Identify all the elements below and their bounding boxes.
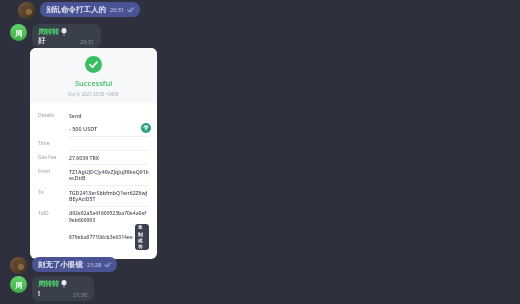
staticText: 好 [38, 36, 46, 45]
button[interactable]: Avatar [18, 2, 35, 19]
button[interactable]: Success [30, 48, 157, 259]
staticText: 679eba07710dcb3e6314ee [69, 234, 133, 241]
staticText: 复制成功 [138, 225, 146, 249]
staticText: TGD2413erSbbfmbQ1wr62Z6wJBEyAciD5T [69, 189, 149, 203]
button[interactable]: Details [38, 112, 149, 119]
staticText: 周转转 [38, 27, 59, 36]
staticText: Gas Fee [38, 154, 57, 161]
staticText: 周转转 [38, 279, 59, 288]
button[interactable]: Avatar [10, 257, 117, 274]
staticText: From [38, 168, 51, 175]
staticText: - 500 USDT [69, 125, 98, 132]
staticText: Successful [75, 78, 113, 88]
staticText: Oct 4, 2023 20:30 +0400 [68, 91, 119, 97]
staticText: 21:30 [73, 291, 88, 298]
other: Read [127, 7, 134, 12]
button[interactable]: Gas Fee [38, 154, 149, 161]
button[interactable]: TxID [38, 210, 149, 250]
button[interactable]: Avatar [10, 276, 94, 301]
button[interactable]: Avatar [10, 24, 27, 41]
other: USDT [141, 123, 151, 133]
button[interactable]: Avatar [18, 2, 140, 19]
staticText: 周 [15, 28, 23, 38]
staticText: TZ1AgUJDCJy49vZJqJuJf8keQ91kecDtiB [69, 168, 149, 182]
staticText: To [38, 189, 44, 196]
staticText: 刻无了小眼镜 [38, 260, 83, 269]
staticText: 20:31 [80, 38, 95, 45]
button[interactable]: Avatar [10, 276, 27, 293]
button[interactable]: To [38, 189, 149, 203]
staticText: 27.6039 TRX [69, 154, 100, 161]
button[interactable]: 复制成功 [138, 225, 146, 249]
staticText: 21:28 [87, 261, 102, 268]
other: Success [85, 56, 102, 73]
staticText: Details [38, 112, 55, 119]
staticText: ! [38, 288, 41, 298]
staticText: 别乱命令打工人的 [46, 5, 106, 14]
button[interactable]: From [38, 168, 149, 182]
button[interactable]: - 500 USDT [69, 123, 151, 133]
staticText: d92e92a5a41609523ba70e4a0ef9eb600093 [69, 210, 149, 224]
staticText: 20:31 [110, 6, 125, 13]
button[interactable]: Avatar [10, 24, 101, 48]
staticText: 周 [15, 280, 23, 290]
staticText: Send [69, 112, 82, 119]
button[interactable]: Time [38, 140, 149, 147]
staticText: TxID [38, 210, 49, 217]
button[interactable]: Avatar [10, 257, 27, 274]
other: Read [104, 262, 111, 267]
staticText: Time [38, 140, 50, 147]
